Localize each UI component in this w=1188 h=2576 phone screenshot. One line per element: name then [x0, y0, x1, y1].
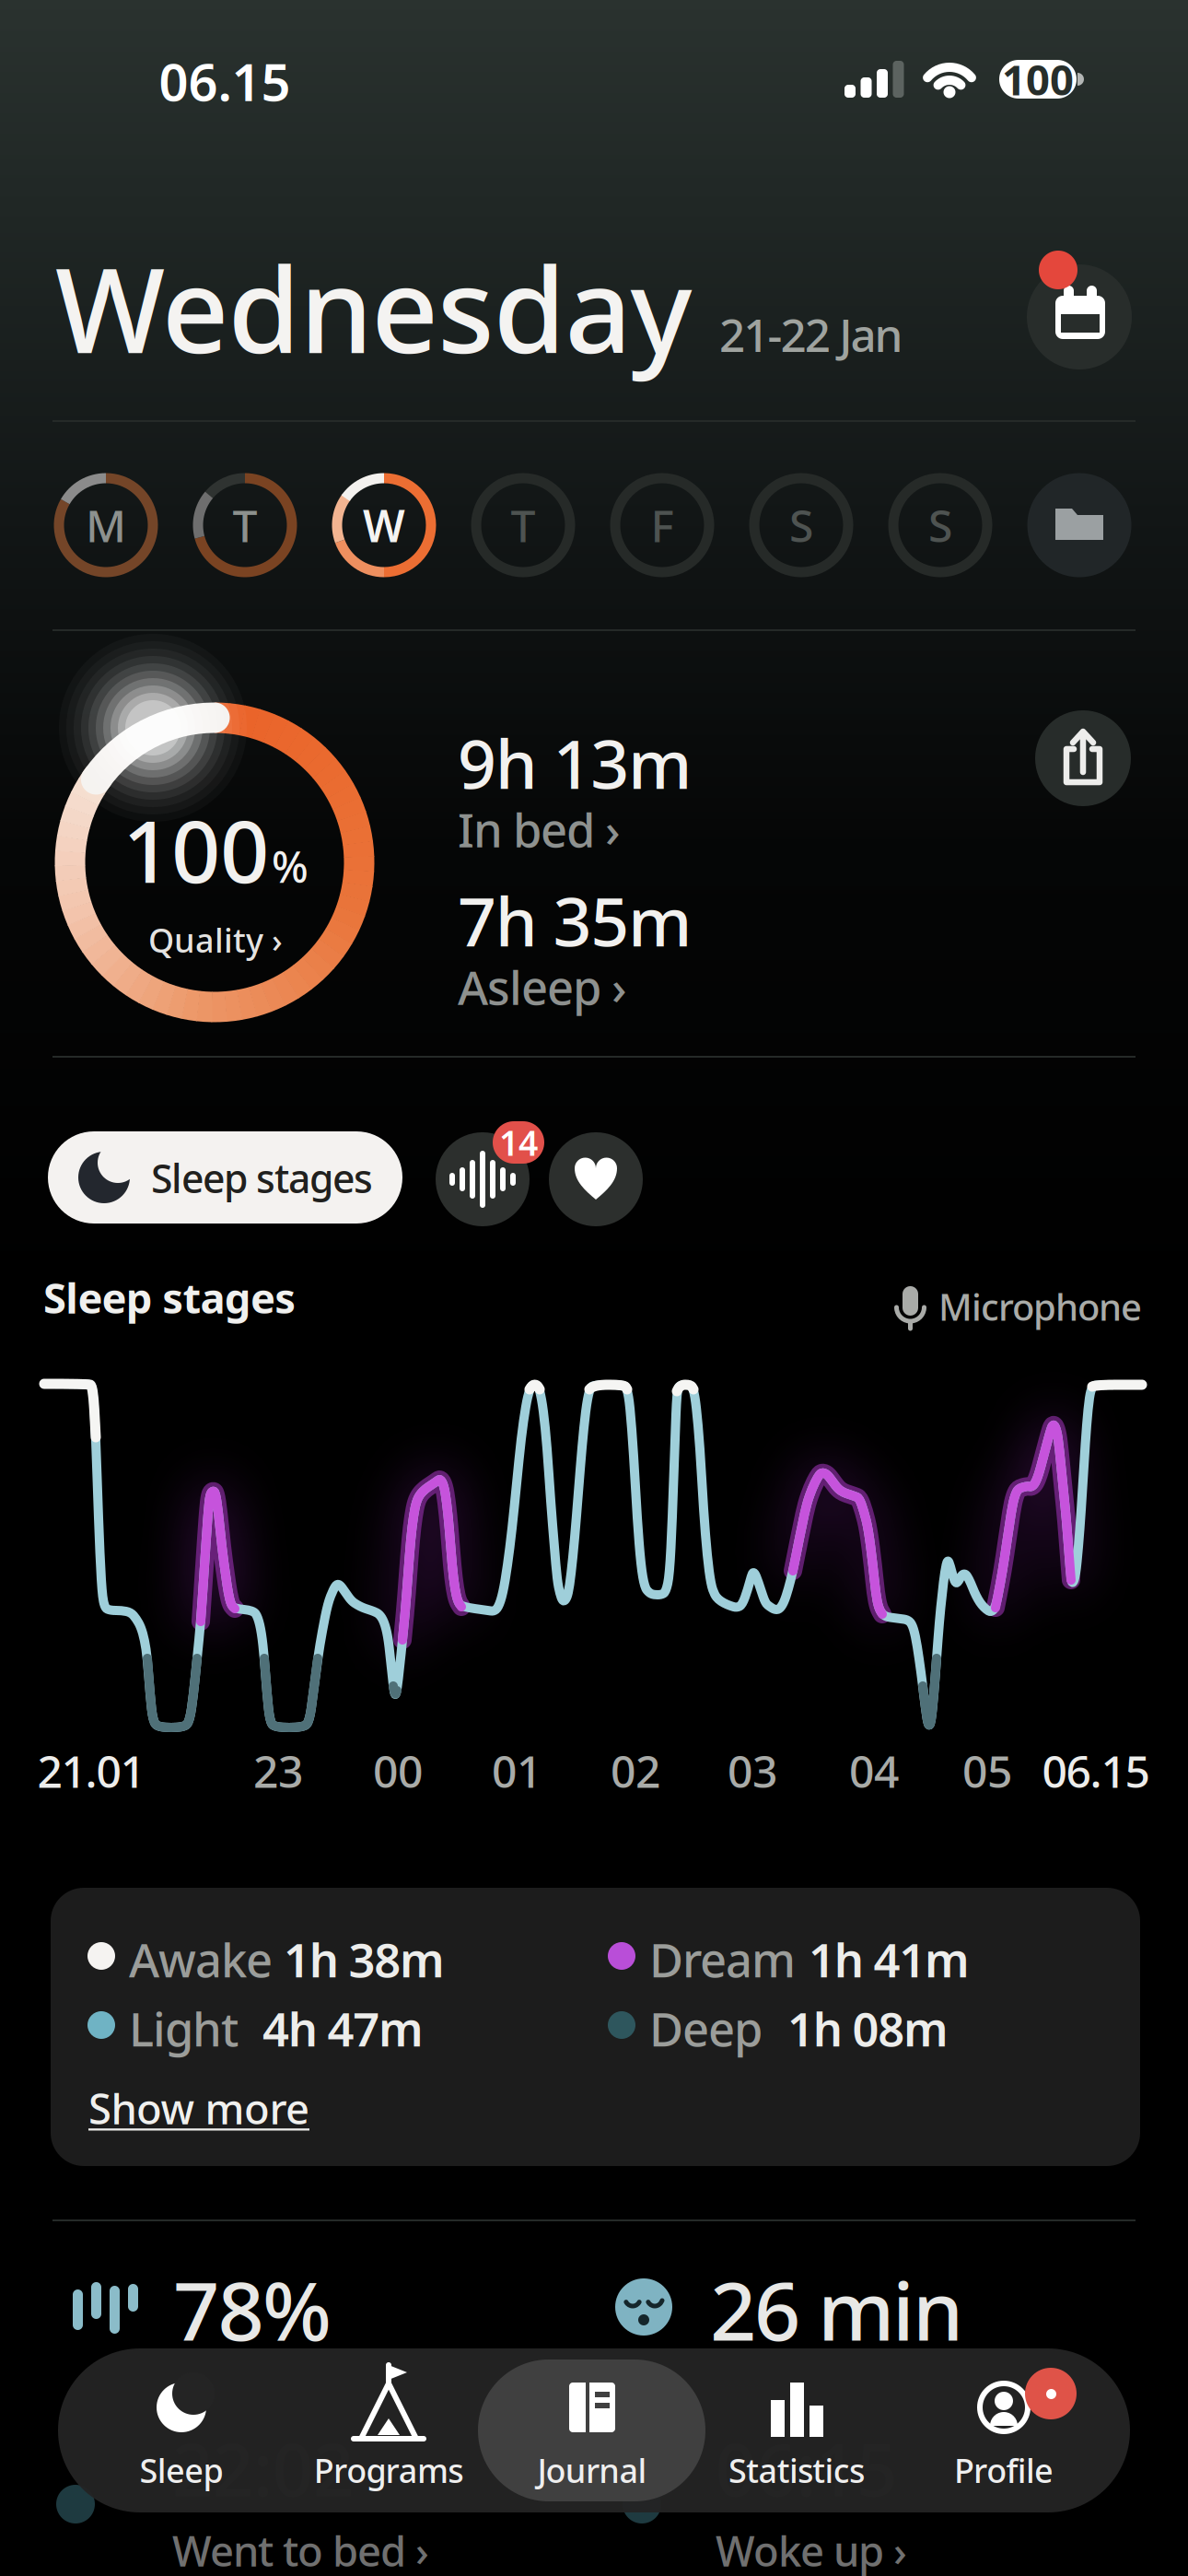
staticText: 23: [253, 1741, 303, 1800]
button[interactable]: S: [0, 0, 1188, 2576]
staticText: Woke up ›: [716, 2523, 907, 2576]
staticText: W: [363, 496, 405, 554]
staticText: Wednesday: [55, 230, 692, 385]
button[interactable]: 9h 13m: [0, 0, 234, 143]
button[interactable]: Sleep stages: [0, 0, 355, 92]
staticText: 7h 35m: [458, 875, 692, 965]
button[interactable]: 100: [0, 0, 1188, 2576]
staticText: S: [789, 496, 813, 554]
staticText: 14: [499, 1120, 538, 1165]
staticText: Journal: [537, 2448, 647, 2492]
staticText: 00: [373, 1741, 423, 1800]
staticText: In bed ›: [458, 798, 621, 860]
staticText: 4h 47m: [262, 1997, 424, 2059]
staticText: 03: [728, 1741, 777, 1800]
staticText: 06:15: [716, 2421, 897, 2516]
staticText: 26 min: [710, 2255, 963, 2363]
button[interactable]: Profile: [0, 0, 1188, 2576]
staticText: 100: [122, 792, 269, 907]
button[interactable]: Sleep: [0, 0, 1188, 2576]
staticText: Awake: [129, 1928, 273, 1990]
button[interactable]: T: [0, 0, 1188, 2576]
staticText: M: [86, 496, 126, 554]
staticText: T: [511, 496, 536, 554]
staticText: 9h 13m: [458, 718, 692, 807]
staticText: F: [651, 496, 674, 554]
staticText: 100: [1002, 52, 1074, 107]
staticText: Statistics: [729, 2448, 865, 2492]
button[interactable]: [0, 0, 1188, 2576]
staticText: 01: [492, 1741, 542, 1800]
staticText: Programs: [314, 2448, 463, 2492]
button[interactable]: F: [0, 0, 1188, 2576]
staticText: 1h 38m: [284, 1928, 445, 1990]
staticText: Show more: [88, 2080, 309, 2136]
button[interactable]: [0, 0, 1188, 2576]
button[interactable]: Programs: [0, 0, 1188, 2576]
button[interactable]: W: [0, 0, 1188, 2576]
staticText: Asleep ›: [458, 956, 627, 1018]
staticText: Sleep: [140, 2448, 223, 2492]
button[interactable]: [0, 0, 1188, 2576]
button[interactable]: T: [0, 0, 1188, 2576]
staticText: %: [272, 838, 309, 895]
staticText: Light: [129, 1997, 239, 2059]
staticText: Dream: [649, 1928, 796, 1990]
staticText: 06.15: [159, 47, 291, 115]
button[interactable]: S: [0, 0, 1188, 2576]
staticText: Microphone: [938, 1282, 1142, 1331]
staticText: 22:02: [172, 2421, 354, 2516]
staticText: 02: [611, 1741, 660, 1800]
staticText: 05: [962, 1741, 1012, 1800]
button[interactable]: 7h 35m: [0, 0, 234, 143]
button[interactable]: Journal: [0, 0, 1188, 2576]
staticText: 78%: [173, 2255, 332, 2363]
staticText: 1h 41m: [809, 1928, 970, 1990]
button[interactable]: 14: [0, 0, 1188, 2576]
staticText: Quality ›: [148, 918, 283, 962]
staticText: Went to bed ›: [172, 2523, 429, 2576]
button[interactable]: [0, 0, 1188, 2576]
staticText: 1h 08m: [787, 1997, 949, 2059]
staticText: Sleep stages: [151, 1152, 373, 1204]
button[interactable]: Statistics: [0, 0, 1188, 2576]
staticText: T: [233, 496, 257, 554]
staticText: Profile: [954, 2448, 1054, 2492]
staticText: Deep: [649, 1997, 763, 2059]
staticText: 21.01: [37, 1741, 145, 1800]
staticText: S: [928, 496, 952, 554]
staticText: 21-22 Jan: [719, 304, 903, 364]
staticText: Sleep stages: [43, 1270, 296, 1325]
button[interactable]: M: [0, 0, 1188, 2576]
staticText: 06.15: [1042, 1741, 1150, 1800]
staticText: 04: [849, 1741, 899, 1800]
